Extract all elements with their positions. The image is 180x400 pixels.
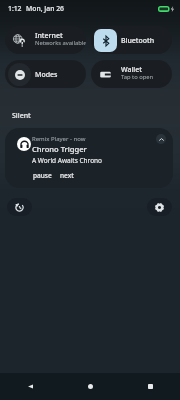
button[interactable]: Back [0, 373, 60, 400]
button[interactable]: Recents [120, 373, 180, 400]
staticText: Silent [12, 111, 31, 121]
button[interactable]: Home [60, 373, 120, 400]
button[interactable]: Collapse [156, 134, 166, 144]
staticText: Modes [35, 70, 58, 80]
button[interactable]: next [59, 171, 75, 180]
button[interactable]: Wallet [91, 60, 172, 88]
staticText: Networks available [35, 39, 86, 47]
staticText: Tap to open [121, 73, 154, 81]
button[interactable]: Collapse [5, 128, 173, 188]
button[interactable]: pause [32, 171, 53, 180]
staticText: Remix Player - now [32, 135, 86, 143]
staticText: Bluetooth [121, 36, 155, 46]
button[interactable]: Internet [5, 26, 86, 54]
button[interactable]: Bluetooth [91, 26, 172, 54]
button[interactable]: Modes [5, 60, 86, 88]
button[interactable]: Notification history [7, 198, 32, 216]
staticText: 1:12 [8, 4, 22, 13]
button[interactable]: Settings [147, 198, 172, 216]
staticText: Internet [35, 31, 63, 41]
staticText: Wallet [121, 65, 142, 75]
staticText: A World Awaits Chrono [32, 156, 103, 165]
staticText: Chrono Trigger [32, 144, 87, 154]
staticText: Mon, Jan 26 [26, 4, 64, 13]
